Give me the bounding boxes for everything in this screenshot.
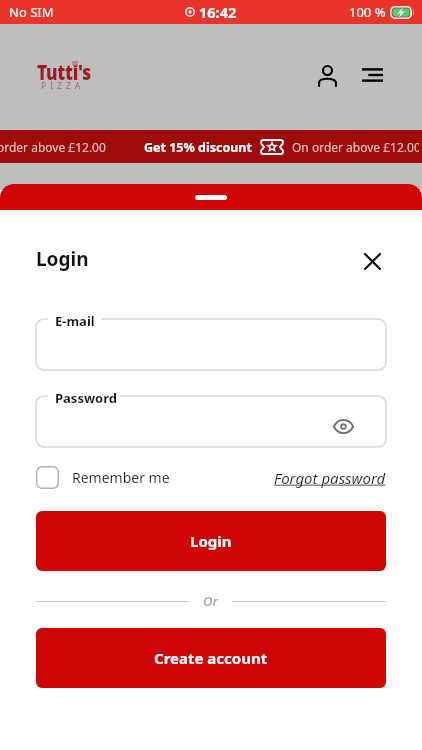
- button[interactable]: Create account: [36, 628, 386, 688]
- staticText: On order above £12.00: [292, 139, 419, 155]
- button[interactable]: Remember me: [36, 466, 170, 489]
- staticText: Forgot password: [274, 468, 386, 488]
- staticText: Password: [55, 389, 117, 407]
- staticText: Login: [190, 531, 232, 551]
- button[interactable]: Menu: [355, 58, 389, 92]
- staticText: PIZZA: [41, 79, 85, 91]
- button[interactable]: Account: [310, 58, 344, 92]
- staticText: 100 %: [349, 3, 386, 21]
- staticText: E-mail: [55, 312, 95, 330]
- staticText: order above £12.00: [0, 139, 106, 155]
- staticText: Create account: [154, 648, 268, 668]
- button[interactable]: Show password: [326, 409, 360, 443]
- staticText: Remember me: [72, 468, 170, 487]
- button[interactable]: Login: [36, 511, 386, 571]
- button[interactable]: Tutti's Pizza home: [37, 58, 107, 98]
- staticText: No SIM: [9, 3, 54, 21]
- button[interactable]: Forgot password: [274, 468, 386, 488]
- staticText: Login: [36, 246, 89, 272]
- staticText: Tutti's: [37, 58, 91, 87]
- button[interactable]: Close: [356, 244, 386, 274]
- staticText: Get 15% discount: [144, 139, 252, 156]
- staticText: Or: [203, 592, 218, 610]
- staticText: 16:42: [199, 2, 237, 22]
